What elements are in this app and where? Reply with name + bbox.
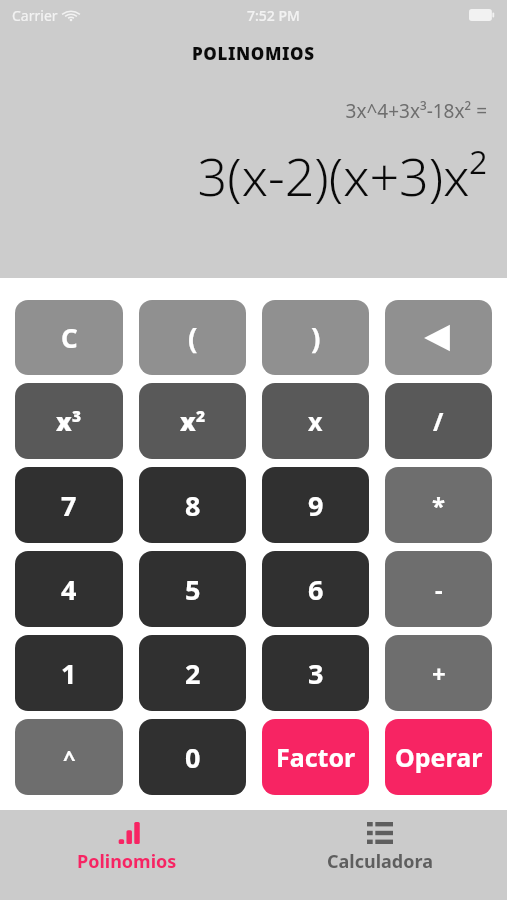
staticText: C xyxy=(61,320,78,355)
button[interactable]: * xyxy=(385,467,492,543)
staticText: ) xyxy=(311,319,321,357)
staticText: 8 xyxy=(185,487,201,524)
staticText: 2 xyxy=(196,405,206,426)
staticText: / xyxy=(433,404,444,438)
staticText: 3x^4+3x³-18x² = xyxy=(345,98,487,124)
button[interactable]: Polinomios xyxy=(0,810,253,900)
staticText: 7 xyxy=(61,487,77,524)
staticText: + xyxy=(432,657,446,690)
button[interactable]: Factor xyxy=(262,719,369,795)
staticText: 3 xyxy=(308,655,324,692)
staticText: Calculadora xyxy=(327,849,433,874)
staticText: x xyxy=(308,404,323,438)
staticText: 1 xyxy=(61,655,77,692)
staticText: ^ xyxy=(63,742,76,772)
staticText: - xyxy=(435,573,443,606)
staticText: x xyxy=(180,404,196,438)
staticText: Polinomios xyxy=(77,849,177,874)
button[interactable]: + xyxy=(385,635,492,711)
staticText: x xyxy=(56,404,72,438)
staticText: 3 xyxy=(72,405,82,426)
staticText: 9 xyxy=(308,487,324,524)
button[interactable]: 7 xyxy=(15,467,123,543)
button[interactable]: 4 xyxy=(15,551,123,627)
staticText: * xyxy=(432,489,446,522)
staticText: ( xyxy=(188,319,198,357)
staticText: 4 xyxy=(61,571,77,608)
button[interactable]: 2 xyxy=(139,635,246,711)
staticText: Operar xyxy=(395,740,483,774)
button[interactable]: 1 xyxy=(15,635,123,711)
staticText: 2 xyxy=(185,655,201,692)
button[interactable]: Backspace xyxy=(385,300,492,375)
button[interactable]: - xyxy=(385,551,492,627)
staticText: 3(x-2)(x+3)x² xyxy=(197,140,487,211)
button[interactable]: 3 xyxy=(262,635,369,711)
button[interactable]: C xyxy=(15,300,123,375)
button[interactable]: ( xyxy=(139,300,246,375)
button[interactable]: Calculadora xyxy=(253,810,507,900)
staticText: 6 xyxy=(308,571,324,608)
button[interactable]: 8 xyxy=(139,467,246,543)
button[interactable]: 5 xyxy=(139,551,246,627)
button[interactable]: / xyxy=(385,383,492,459)
button[interactable]: 9 xyxy=(262,467,369,543)
button[interactable]: 0 xyxy=(139,719,246,795)
button[interactable]: x xyxy=(139,383,246,459)
button[interactable]: ^ xyxy=(15,719,123,795)
button[interactable]: ) xyxy=(262,300,369,375)
staticText: 7:52 PM xyxy=(247,6,300,25)
staticText: Factor xyxy=(276,740,356,774)
button[interactable]: x xyxy=(15,383,123,459)
staticText: Carrier xyxy=(12,6,58,25)
button[interactable]: x xyxy=(262,383,369,459)
staticText: 5 xyxy=(185,571,201,608)
button[interactable]: 6 xyxy=(262,551,369,627)
staticText: POLINOMIOS xyxy=(192,42,315,65)
staticText: 0 xyxy=(185,739,201,776)
button[interactable]: Operar xyxy=(385,719,492,795)
